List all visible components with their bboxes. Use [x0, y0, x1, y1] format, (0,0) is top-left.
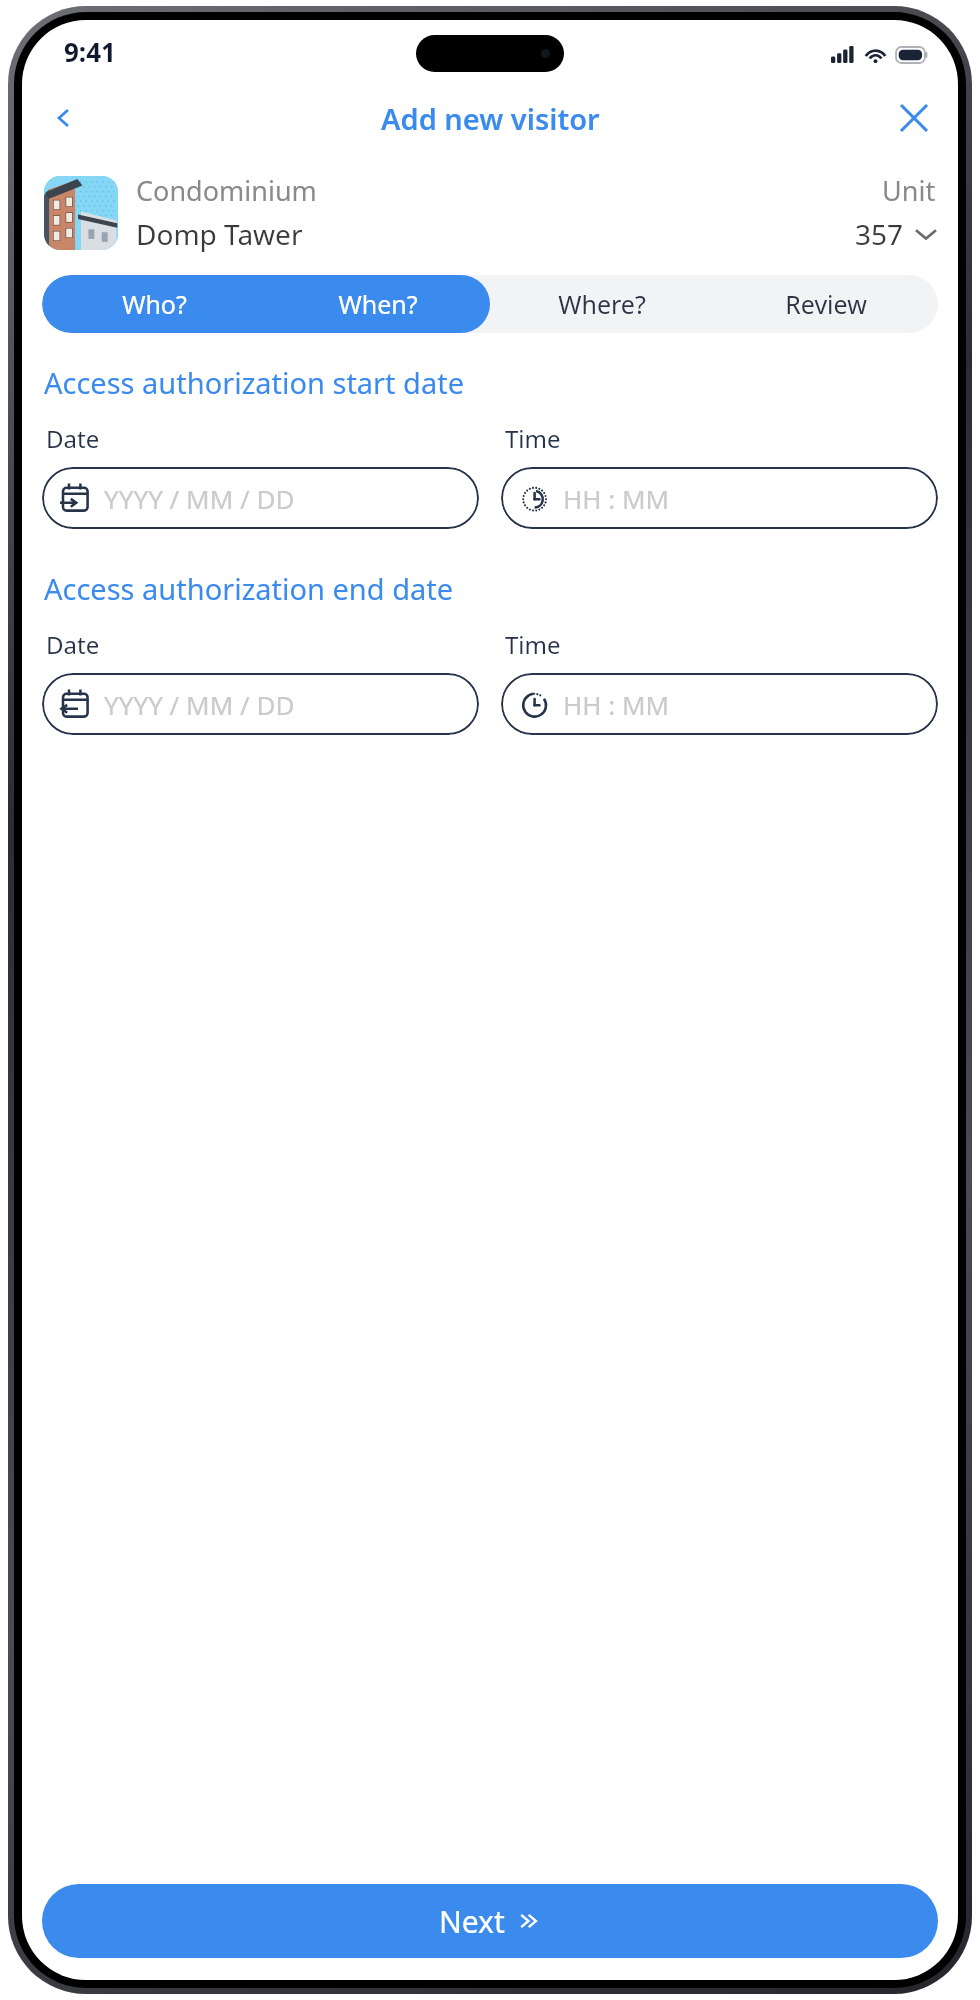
staticText: Review — [785, 287, 867, 321]
staticText: YYYY / MM / DD — [104, 481, 295, 516]
staticText: 357 — [855, 215, 904, 253]
button[interactable]: Back — [38, 92, 90, 144]
staticText: Domp Tawer — [136, 215, 303, 253]
other: Time — [519, 483, 549, 513]
staticText: Next — [439, 1901, 505, 1942]
button[interactable]: End date — [42, 673, 479, 735]
staticText: Where? — [558, 287, 646, 321]
other: Start date — [60, 483, 90, 513]
staticText: Add new visitor — [381, 99, 600, 138]
button[interactable]: Close — [888, 92, 940, 144]
staticText: Unit — [882, 172, 936, 209]
staticText: Access authorization end date — [44, 569, 936, 608]
staticText: Access authorization start date — [44, 363, 936, 402]
staticText: When? — [338, 287, 418, 321]
other: Time — [519, 689, 549, 719]
staticText: 9:41 — [64, 34, 116, 69]
button[interactable]: Where? — [490, 275, 714, 333]
button[interactable]: Condominium — [44, 172, 936, 253]
button[interactable]: Start date — [42, 467, 479, 529]
staticText: HH : MM — [563, 687, 670, 722]
button[interactable]: Time — [501, 467, 938, 529]
staticText: Time — [505, 422, 561, 455]
button[interactable]: Who? — [42, 275, 266, 333]
staticText: YYYY / MM / DD — [104, 687, 295, 722]
staticText: HH : MM — [563, 481, 670, 516]
button[interactable]: When? — [266, 275, 490, 333]
button[interactable]: Review — [714, 275, 938, 333]
button[interactable]: Next — [42, 1884, 938, 1958]
button[interactable]: Time — [501, 673, 938, 735]
staticText: Time — [505, 628, 561, 661]
staticText: Date — [46, 628, 100, 661]
staticText: Who? — [122, 287, 187, 321]
staticText: Condominium — [136, 172, 317, 209]
staticText: Date — [46, 422, 100, 455]
other: End date — [60, 689, 90, 719]
